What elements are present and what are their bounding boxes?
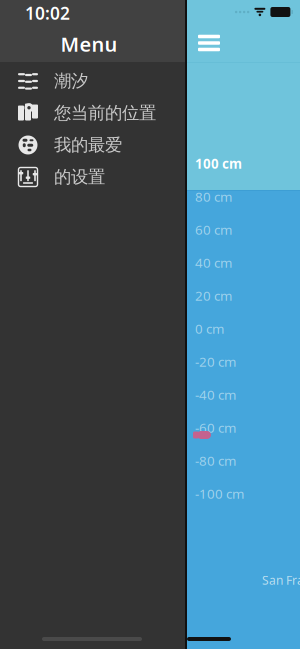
button[interactable]: Menu	[187, 24, 231, 62]
staticText: 60 cm	[195, 221, 232, 238]
staticText: 80 cm	[195, 188, 232, 205]
staticText: 0 cm	[195, 320, 224, 337]
staticText: 潮汐	[54, 70, 88, 92]
button[interactable]: 您当前的位置	[0, 97, 185, 129]
staticText: San Francisco	[262, 572, 300, 588]
staticText: 20 cm	[195, 287, 232, 304]
staticText: 的设置	[54, 166, 105, 188]
button[interactable]: 的设置	[0, 161, 185, 193]
staticText: 40 cm	[195, 254, 232, 271]
button[interactable]: 潮汐	[0, 65, 185, 97]
button[interactable]: 我的最爱	[0, 129, 185, 161]
staticText: -20 cm	[195, 353, 236, 370]
staticText: -100 cm	[195, 485, 244, 502]
staticText: 您当前的位置	[54, 102, 156, 124]
staticText: -80 cm	[195, 452, 236, 469]
staticText: -40 cm	[195, 386, 236, 403]
staticText: Menu	[60, 31, 117, 57]
staticText: 我的最爱	[54, 134, 122, 156]
staticText: 10:02	[25, 1, 70, 24]
staticText: 100 cm	[195, 155, 242, 172]
staticText: -60 cm	[195, 419, 236, 436]
